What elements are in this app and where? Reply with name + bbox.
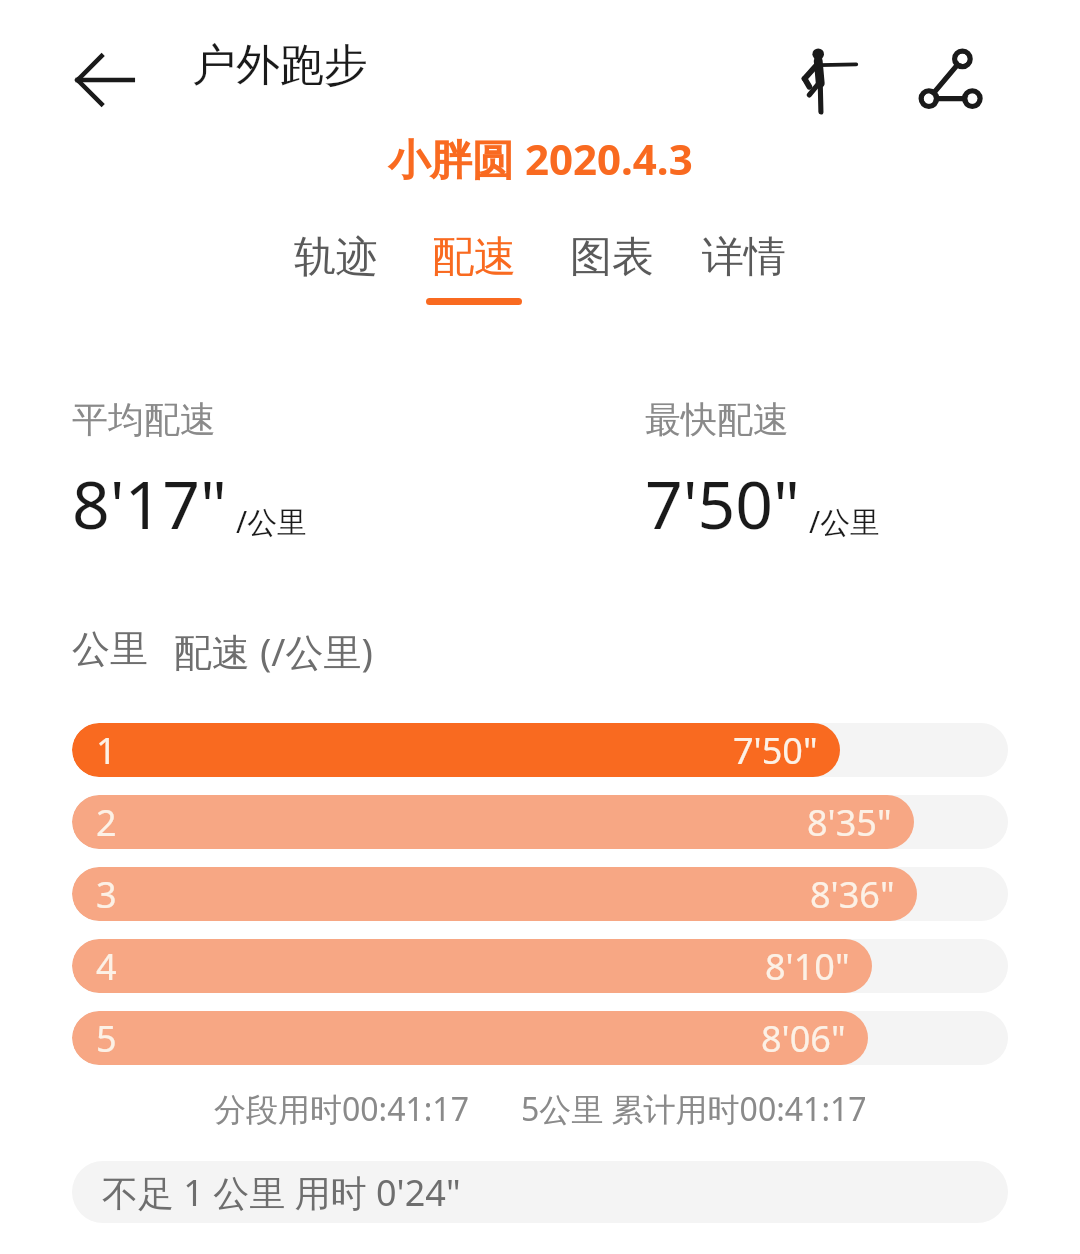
button[interactable]: Running posture [775, 30, 875, 130]
staticText: 图表 [570, 231, 654, 284]
staticText: 轨迹 [294, 231, 378, 284]
button[interactable]: 2 [72, 795, 1008, 849]
staticText: 3 [96, 870, 117, 919]
button[interactable]: 详情 [702, 231, 786, 305]
staticText: 分段用时00:41:17 [214, 1087, 469, 1131]
button[interactable]: 3 [72, 867, 1008, 921]
staticText: 4 [96, 942, 117, 991]
staticText: 配速 [432, 231, 516, 284]
staticText: 公里 [72, 625, 148, 673]
staticText: 7'50" [733, 726, 818, 775]
staticText: 不足 1 公里 用时 0'24" [102, 1168, 461, 1217]
staticText: 户外跑步 [192, 38, 368, 93]
button[interactable]: 1 [72, 723, 1008, 777]
button[interactable]: Share [900, 30, 1000, 130]
staticText: 小胖圆 2020.4.3 [388, 130, 693, 187]
button[interactable]: 5 [72, 1011, 1008, 1065]
staticText: 详情 [702, 231, 786, 284]
staticText: 配速 (/公里) [174, 625, 373, 677]
staticText: 8'36" [810, 870, 895, 919]
button[interactable]: 配速 [426, 231, 522, 305]
staticText: 5公里 累计用时00:41:17 [521, 1087, 867, 1131]
button[interactable]: 不足 1 公里 用时 0'24" [72, 1161, 1008, 1223]
staticText: 8'17" [72, 458, 228, 548]
staticText: /公里 [809, 501, 881, 542]
button[interactable]: 轨迹 [294, 231, 378, 305]
staticText: 最快配速 [645, 397, 789, 442]
staticText: 8'35" [807, 798, 892, 847]
staticText: 8'10" [765, 942, 850, 991]
button[interactable]: 4 [72, 939, 1008, 993]
staticText: 7'50" [645, 458, 801, 548]
staticText: 8'06" [761, 1014, 846, 1063]
staticText: /公里 [236, 501, 308, 542]
staticText: 1 [96, 726, 117, 775]
button[interactable]: Back [64, 40, 144, 120]
button[interactable]: 图表 [570, 231, 654, 305]
staticText: 5 [96, 1014, 117, 1063]
staticText: 2 [96, 798, 117, 847]
staticText: 平均配速 [72, 397, 216, 442]
